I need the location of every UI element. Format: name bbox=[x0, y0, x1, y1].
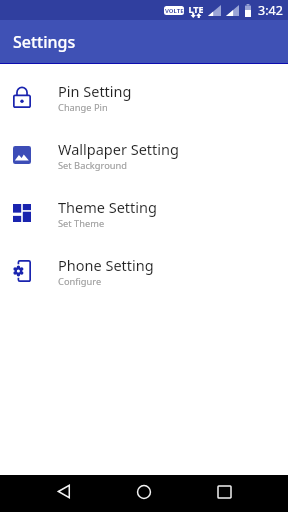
staticText: Settings bbox=[13, 31, 76, 53]
staticText: Wallpaper Setting bbox=[58, 139, 179, 159]
staticText: Set Background bbox=[58, 159, 128, 172]
button[interactable]: Home bbox=[120, 475, 168, 512]
staticText: Pin Setting bbox=[58, 81, 132, 101]
staticText: Set Theme bbox=[58, 217, 105, 230]
button[interactable]: Theme Setting bbox=[0, 184, 288, 242]
staticText: 3:42 bbox=[258, 2, 283, 19]
staticText: Change Pin bbox=[58, 101, 108, 114]
staticText: Configure bbox=[58, 275, 102, 288]
staticText: Theme Setting bbox=[58, 197, 157, 217]
button[interactable]: Recent apps bbox=[200, 475, 248, 512]
staticText: LTE bbox=[188, 3, 203, 15]
button[interactable]: Phone Setting bbox=[0, 242, 288, 300]
button[interactable]: Pin Setting bbox=[0, 68, 288, 126]
staticText: Phone Setting bbox=[58, 255, 154, 275]
button[interactable]: Back bbox=[40, 475, 88, 512]
staticText: VOLTE bbox=[165, 7, 184, 15]
button[interactable]: Wallpaper Setting bbox=[0, 126, 288, 184]
